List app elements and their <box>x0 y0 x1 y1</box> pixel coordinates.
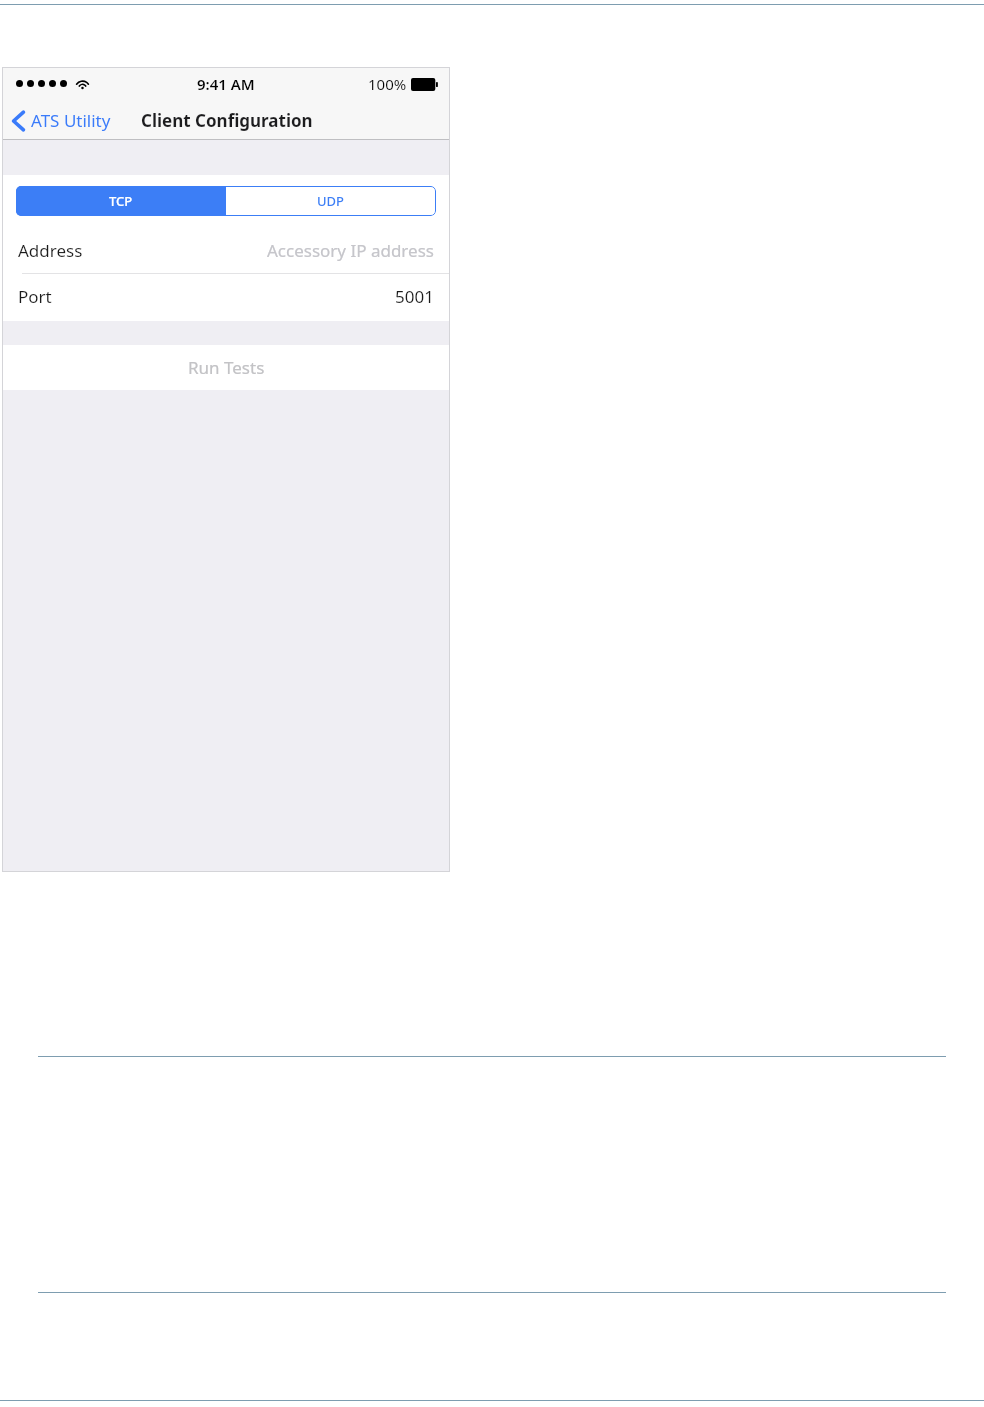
staticText: Address <box>18 239 83 262</box>
staticText: ATS Utility <box>31 109 111 132</box>
button[interactable]: ATS Utility <box>2 105 119 136</box>
button[interactable]: Run Tests <box>2 345 450 390</box>
button[interactable]: Address <box>2 228 450 273</box>
staticText: TCP <box>109 192 133 210</box>
staticText: Accessory IP address <box>267 239 434 262</box>
staticText: UDP <box>317 192 345 210</box>
button[interactable]: Port <box>2 274 450 319</box>
staticText: 5001 <box>395 285 434 308</box>
staticText: Run Tests <box>188 356 265 379</box>
staticText: Client Configuration <box>141 109 313 132</box>
button[interactable]: TCP <box>16 186 226 216</box>
button[interactable]: UDP <box>226 186 436 216</box>
staticText: 100% <box>368 74 407 94</box>
staticText: 9:41 AM <box>197 74 255 94</box>
staticText: Port <box>18 285 52 308</box>
